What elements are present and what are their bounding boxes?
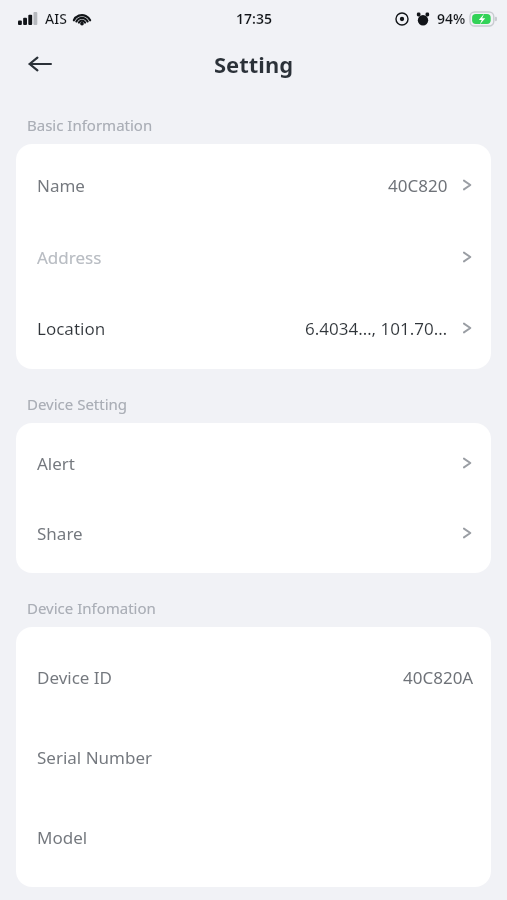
button[interactable]: Back [16,40,64,88]
staticText: Location [37,317,106,340]
staticText: Address [37,246,102,269]
staticText: Device Infomation [27,598,156,618]
button[interactable]: Serial Number [16,727,491,787]
button[interactable]: Alert [16,433,491,493]
button[interactable]: Share [16,503,491,563]
staticText: Setting [214,49,294,79]
button[interactable]: Device ID [16,647,491,707]
staticText: Serial Number [37,746,153,769]
staticText: 6.4034…, 101.70… [305,317,448,340]
button[interactable]: Location [16,298,491,358]
button[interactable]: Address [16,227,491,287]
staticText: Model [37,826,88,849]
staticText: 40C820A [403,666,474,689]
staticText: AIS [45,9,67,28]
staticText: 17:35 [236,9,272,28]
button[interactable]: Model [16,807,491,867]
staticText: 94% [437,9,466,28]
staticText: 40C820 [388,174,448,197]
staticText: Name [37,174,85,197]
staticText: Alert [37,452,75,475]
staticText: Device Setting [27,394,128,414]
button[interactable]: Name [16,155,491,215]
staticText: Device ID [37,666,113,689]
staticText: Basic Information [27,115,153,135]
staticText: Share [37,522,83,545]
